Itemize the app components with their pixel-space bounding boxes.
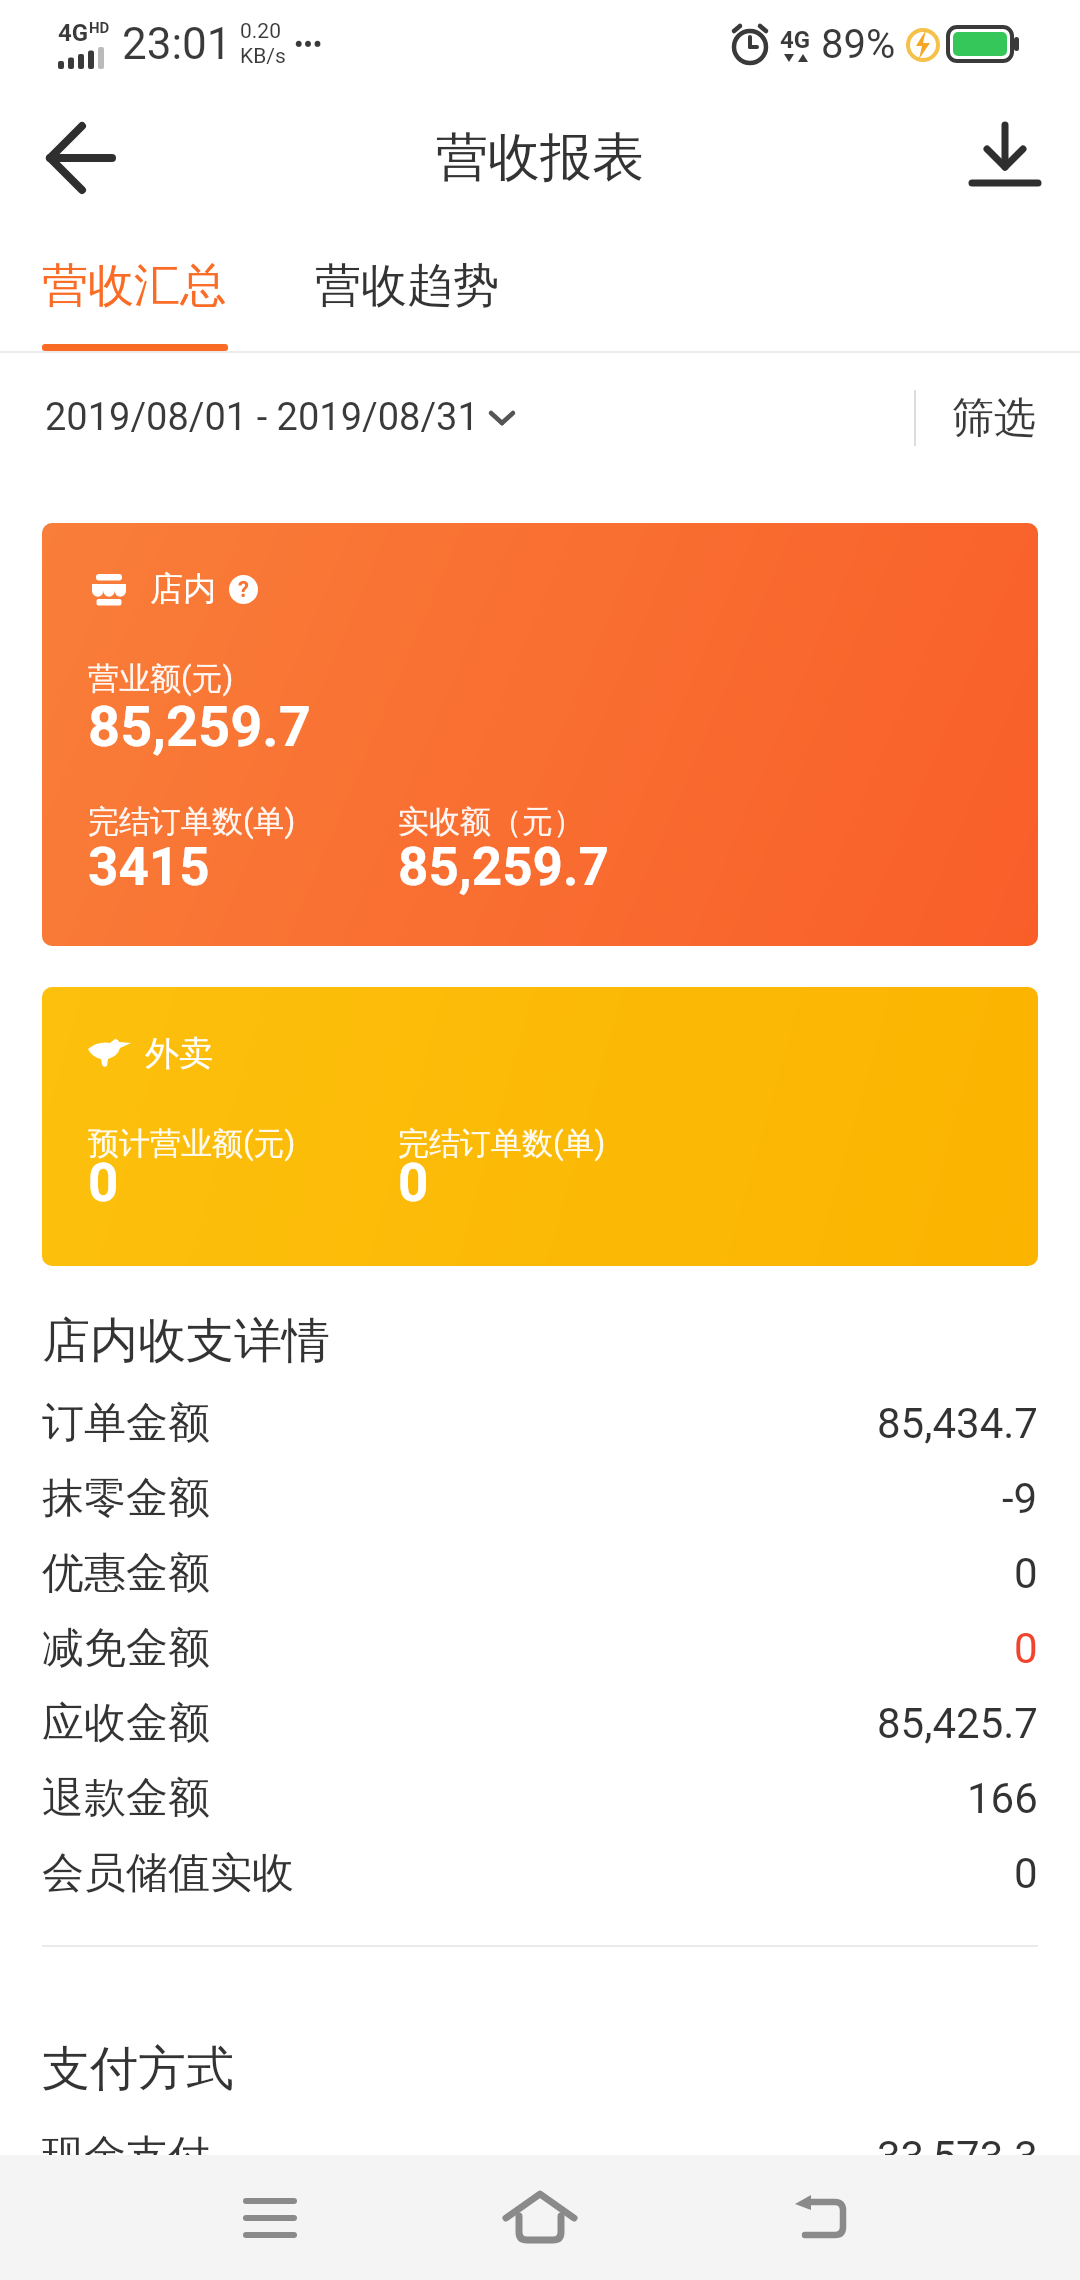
staticText: 2019/08/01 - 2019/08/31 [45, 395, 479, 440]
staticText: 0.20 [240, 19, 281, 44]
button[interactable]: 抹零金额 [42, 1461, 1038, 1536]
staticText: 85,259.7 [88, 694, 311, 760]
staticText: 减免金额 [42, 1622, 210, 1675]
staticText: 33,573.3 [877, 2132, 1038, 2181]
button[interactable] [970, 123, 1040, 193]
staticText: 0 [1014, 1849, 1038, 1898]
staticText: 应收金额 [42, 1697, 210, 1750]
button[interactable]: 优惠金额 [42, 1536, 1038, 1611]
staticText: 4G [58, 19, 89, 47]
staticText: 完结订单数(单) [88, 802, 296, 841]
staticText: 营收报表 [436, 125, 644, 191]
staticText: 营收汇总 [42, 257, 226, 315]
button[interactable] [160, 2155, 380, 2280]
button[interactable]: 筛选 [916, 392, 1080, 445]
staticText: 订单金额 [42, 1397, 210, 1450]
staticText: ? [238, 577, 249, 603]
button[interactable]: 会员储值实收 [42, 1836, 1038, 1911]
staticText: 23:01 [122, 18, 232, 70]
button[interactable] [430, 2155, 650, 2280]
button[interactable]: 订单金额 [42, 1386, 1038, 1461]
staticText: 现金支付 [42, 2130, 210, 2183]
button[interactable] [713, 2155, 933, 2280]
staticText: 预计营业额(元) [88, 1124, 296, 1163]
staticText: 0 [88, 1152, 119, 1214]
staticText: 营业额(元) [88, 659, 234, 698]
button[interactable]: 退款金额 [42, 1761, 1038, 1836]
staticText: 店内 [150, 568, 216, 610]
staticText: 0 [1014, 1549, 1038, 1598]
staticText: 外卖 [145, 1032, 213, 1075]
staticText: 优惠金额 [42, 1547, 210, 1600]
staticText: 营收趋势 [315, 257, 499, 315]
staticText: -9 [1002, 1474, 1038, 1523]
staticText: 退款金额 [42, 1772, 210, 1825]
staticText: 实收额（元） [398, 802, 584, 841]
staticText: 抹零金额 [42, 1472, 210, 1525]
button[interactable]: 2019/08/01 - 2019/08/31 [45, 395, 515, 440]
staticText: 4G [780, 26, 811, 54]
button[interactable]: 应收金额 [42, 1686, 1038, 1761]
button[interactable]: 外卖 [42, 987, 1038, 1266]
button[interactable]: 现金支付 [42, 2119, 1038, 2194]
staticText: 会员储值实收 [42, 1847, 294, 1900]
staticText: 0 [398, 1152, 429, 1214]
button[interactable]: 营收汇总 [42, 228, 228, 351]
staticText: KB/s [240, 44, 286, 69]
staticText: HD [89, 19, 110, 37]
staticText: 筛选 [952, 392, 1036, 445]
button[interactable]: 营收趋势 [315, 228, 499, 344]
button[interactable] [42, 118, 122, 198]
staticText: 店内收支详情 [42, 1311, 330, 1371]
staticText: 0 [1014, 1624, 1038, 1673]
staticText: ••• [294, 29, 323, 59]
button[interactable]: 店内 [42, 523, 1038, 946]
staticText: 3415 [88, 836, 210, 898]
staticText: 支付方式 [42, 2039, 234, 2099]
staticText: 85,425.7 [877, 1699, 1038, 1748]
staticText: 85,434.7 [877, 1399, 1038, 1448]
staticText: 完结订单数(单) [398, 1124, 606, 1163]
staticText: 85,259.7 [398, 836, 609, 898]
button[interactable]: 减免金额 [42, 1611, 1038, 1686]
staticText: 89% [821, 21, 896, 68]
staticText: 166 [967, 1774, 1038, 1823]
